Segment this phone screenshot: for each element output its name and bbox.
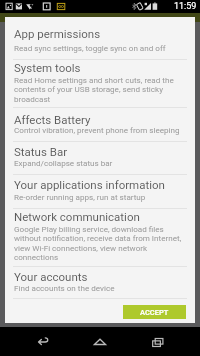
staticText: Find accounts on the device [14, 283, 115, 292]
button[interactable] [5, 141, 195, 171]
staticText: Status Bar [14, 145, 68, 158]
staticText: Your accounts [14, 270, 88, 283]
staticText: Read Home settings and short cuts, read … [14, 75, 174, 84]
button[interactable]: Home [85, 327, 115, 356]
staticText: Expand/collapse status bar [14, 158, 113, 167]
staticText: ACCEPT [140, 308, 169, 317]
staticText: Google Play billing service, download fi… [14, 224, 164, 233]
staticText: view Wi-Fi connections, view network [14, 243, 148, 252]
button[interactable] [5, 174, 195, 204]
staticText: Your applications information [14, 178, 165, 191]
button[interactable] [5, 266, 195, 296]
staticText: broadcast [14, 94, 51, 103]
staticText: System tools [14, 61, 81, 74]
staticText: without notification, receive data from … [14, 233, 182, 242]
staticText: App permissions [14, 27, 101, 40]
staticText: Network communication [14, 210, 140, 223]
button[interactable]: ACCEPT [123, 305, 186, 319]
staticText: Read sync settings, toggle sync on and o… [14, 43, 166, 52]
button[interactable] [5, 59, 195, 107]
button[interactable]: Back [28, 327, 58, 356]
staticText: contents of your USB storage, send stick… [14, 84, 163, 93]
staticText: 11:59 [174, 1, 197, 12]
button[interactable] [5, 107, 195, 137]
button[interactable] [5, 208, 195, 265]
button[interactable]: Recents [143, 327, 173, 356]
staticText: Affects Battery [14, 113, 91, 126]
staticText: Re-order running apps, run at startup [14, 192, 146, 201]
staticText: connections [14, 252, 59, 261]
staticText: Control vibration, prevent phone from sl… [14, 125, 180, 134]
button[interactable] [5, 17, 195, 56]
